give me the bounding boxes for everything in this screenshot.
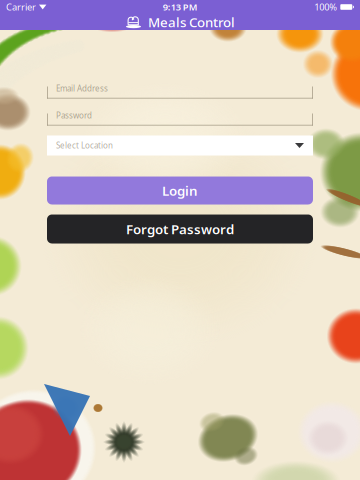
staticText: 9:13 PM <box>163 1 198 13</box>
staticText: Login <box>162 182 198 199</box>
button[interactable]: Login <box>47 176 313 204</box>
staticText: Forgot Password <box>126 220 234 238</box>
staticText: Meals Control <box>148 13 235 31</box>
staticText: Carrier <box>6 1 36 13</box>
staticText: Select Location <box>56 140 113 151</box>
staticText: Password <box>56 110 92 121</box>
staticText: Email Address <box>56 83 108 94</box>
button[interactable]: Forgot Password <box>47 214 313 243</box>
staticText: 100% <box>314 1 337 13</box>
